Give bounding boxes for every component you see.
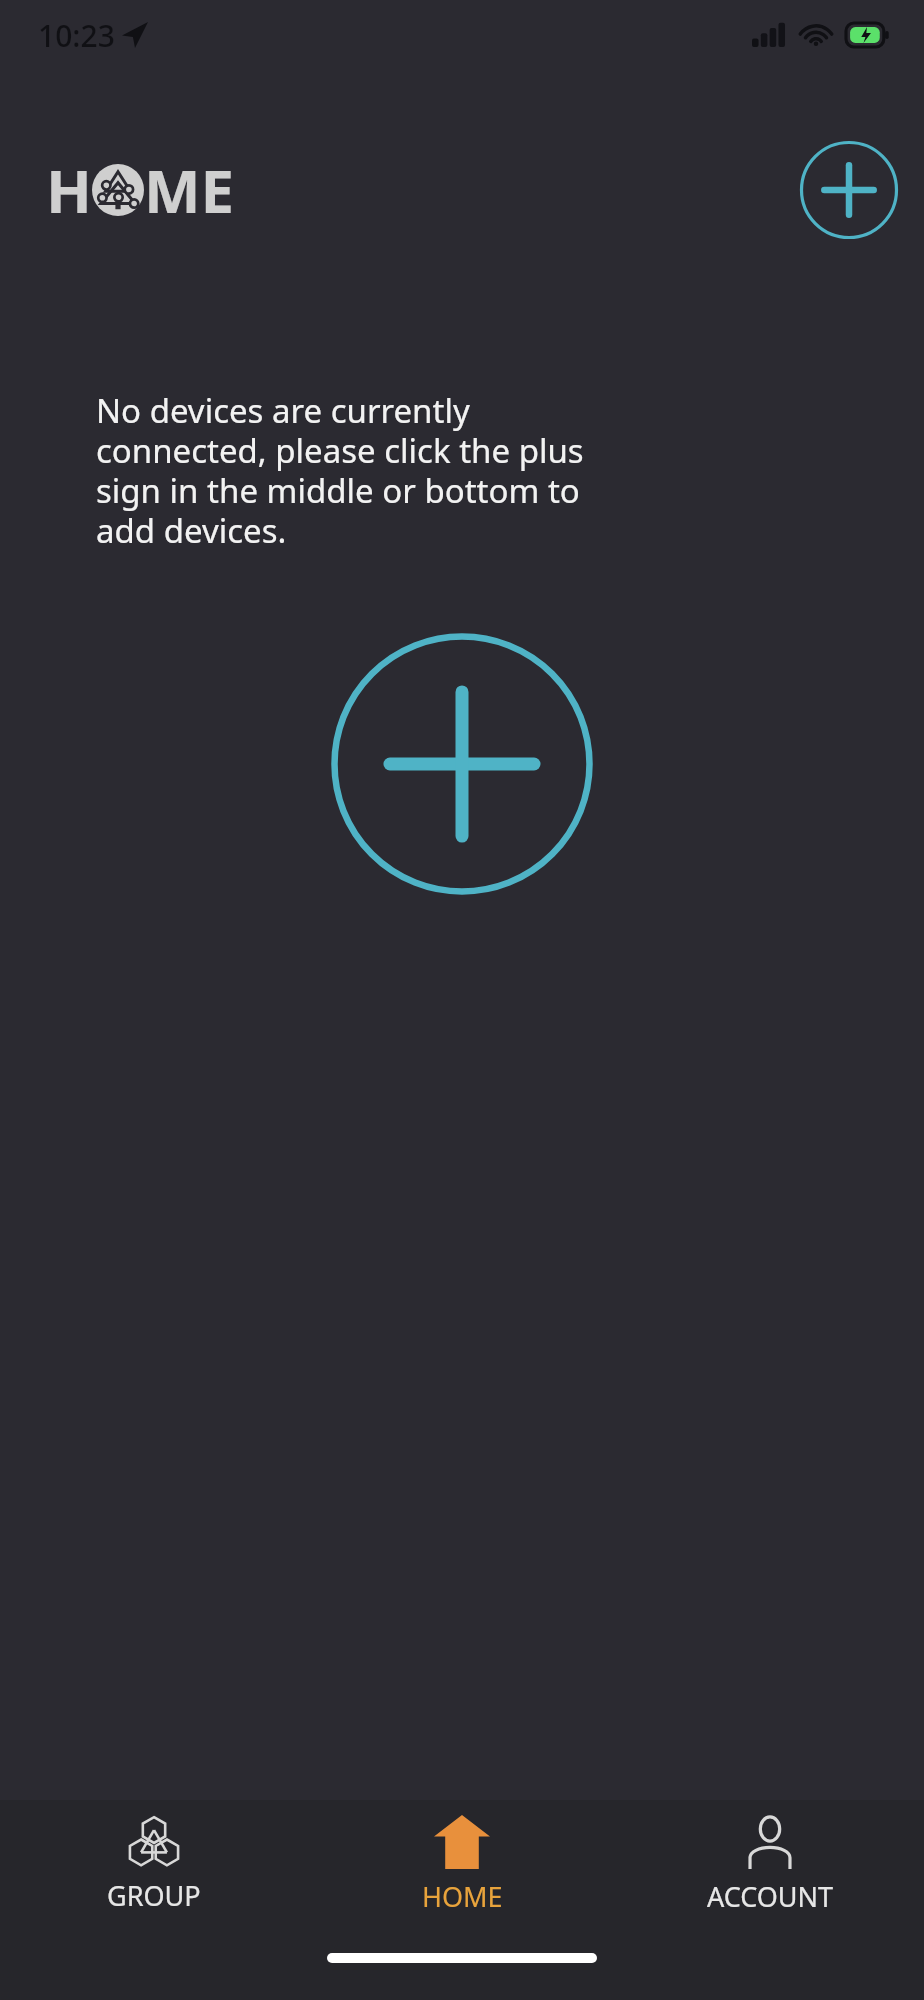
staticText: No devices are currently connected, plea… bbox=[96, 388, 634, 553]
button[interactable]: HOME bbox=[308, 1800, 616, 1930]
button[interactable]: ACCOUNT bbox=[616, 1800, 924, 1930]
staticText: ME bbox=[144, 149, 235, 231]
staticText: H bbox=[46, 149, 92, 231]
button[interactable]: Add device bbox=[790, 140, 908, 240]
staticText: HOME bbox=[422, 1878, 503, 1915]
button[interactable]: GROUP bbox=[0, 1800, 308, 1930]
staticText: ACCOUNT bbox=[707, 1878, 834, 1915]
staticText: GROUP bbox=[107, 1877, 201, 1914]
staticText: 10:23 bbox=[38, 15, 115, 56]
button[interactable]: Add device bbox=[331, 633, 593, 895]
